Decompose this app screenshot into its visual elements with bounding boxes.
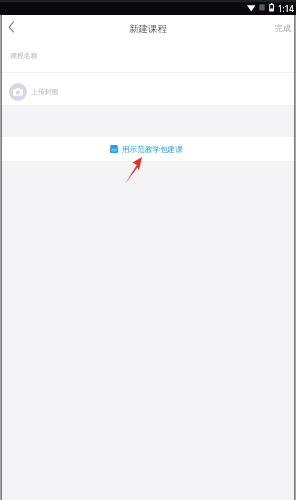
button[interactable]: 课程名称 [0,38,296,72]
button[interactable]: 用示范教学包建课 [0,137,296,161]
staticText: 课程名称 [10,51,38,60]
button[interactable]: 完成 [267,15,296,38]
button[interactable]: Back [0,16,22,38]
staticText: 完成 [275,23,291,33]
staticText: 用示范教学包建课 [122,145,183,155]
staticText: 新建课程 [129,23,167,35]
staticText: 上传封面 [31,87,59,96]
staticText: 1:14 [278,3,294,14]
button[interactable]: 上传封面 [0,73,296,105]
